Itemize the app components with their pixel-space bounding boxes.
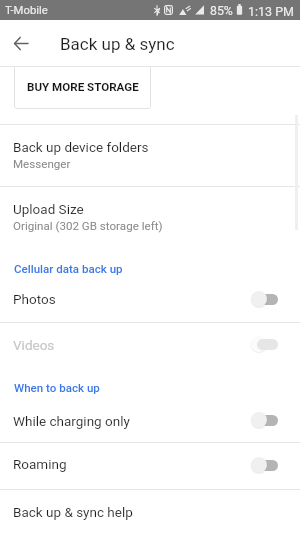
button[interactable]: Roaming <box>0 443 300 489</box>
button[interactable]: Back up & sync help <box>0 490 300 533</box>
button[interactable]: Upload Size <box>0 187 300 244</box>
staticText: Back up & sync <box>60 34 175 54</box>
staticText: While charging only <box>13 413 130 429</box>
staticText: T-Mobile <box>5 4 48 17</box>
button[interactable]: Back up device folders <box>0 125 300 186</box>
staticText: Photos <box>13 291 56 307</box>
staticText: Original (302 GB storage left) <box>13 219 163 233</box>
staticText: Videos <box>13 337 55 353</box>
staticText: 1:13 PM <box>248 4 295 19</box>
button[interactable]: Back <box>7 30 34 57</box>
button[interactable]: Photos <box>0 278 300 322</box>
button[interactable]: BUY MORE STORAGE <box>14 60 151 109</box>
staticText: Back up & sync help <box>13 504 133 520</box>
staticText: Cellular data back up <box>14 262 123 276</box>
staticText: 85% <box>210 4 233 18</box>
staticText: BUY MORE STORAGE <box>27 80 139 94</box>
staticText: When to back up <box>14 381 100 395</box>
button[interactable]: While charging only <box>0 400 300 442</box>
staticText: Messenger <box>13 157 71 171</box>
staticText: Roaming <box>13 456 67 472</box>
staticText: Upload Size <box>13 201 84 217</box>
button[interactable]: Videos <box>0 323 300 366</box>
staticText: Back up device folders <box>13 139 149 155</box>
